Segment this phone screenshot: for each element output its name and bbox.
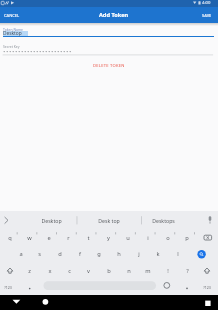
staticText: l — [177, 250, 179, 258]
button[interactable]: o — [158, 230, 177, 246]
button[interactable] — [198, 296, 215, 309]
button[interactable]: i — [138, 230, 157, 246]
staticText: z — [28, 267, 31, 275]
staticText: e — [47, 234, 51, 242]
staticText: ? — [186, 267, 189, 275]
staticText: n — [127, 267, 131, 275]
button[interactable]: t — [79, 230, 98, 246]
staticText: ?123 — [203, 285, 211, 290]
staticText: Add Token — [99, 11, 129, 19]
button[interactable]: q — [0, 230, 19, 246]
staticText: q — [8, 234, 12, 242]
staticText: Desktop — [3, 30, 22, 37]
button[interactable] — [8, 296, 25, 309]
button[interactable]: z — [20, 263, 39, 279]
button[interactable]: r — [59, 230, 78, 246]
button[interactable]: Desktops — [137, 212, 189, 229]
button[interactable]: ?123 — [0, 280, 15, 294]
staticText: g — [97, 250, 101, 258]
staticText: o — [166, 234, 170, 242]
button[interactable]: e — [39, 230, 58, 246]
button[interactable]: DELETE TOKEN — [78, 61, 140, 70]
button[interactable]: n — [119, 263, 138, 279]
staticText: 4:00 — [202, 0, 211, 6]
button[interactable]: w — [20, 230, 39, 246]
button[interactable]: ! — [158, 263, 177, 279]
staticText: ! — [167, 267, 169, 275]
button[interactable]: y — [99, 230, 118, 246]
button[interactable]: Desktop — [26, 212, 76, 229]
staticText: Token Name — [3, 27, 23, 32]
staticText: j — [138, 250, 140, 258]
staticText: DELETE TOKEN — [93, 63, 125, 69]
button[interactable]: v — [79, 263, 98, 279]
button[interactable]: k — [148, 246, 167, 262]
staticText: x — [48, 267, 52, 275]
staticText: f — [79, 250, 81, 258]
staticText: r — [67, 234, 70, 242]
button[interactable]: CANCEL — [0, 7, 24, 23]
staticText: Desktops — [152, 217, 175, 224]
button[interactable]: h — [109, 246, 128, 262]
staticText: m — [145, 267, 151, 275]
staticText: b — [107, 267, 111, 275]
staticText: a — [19, 250, 23, 258]
button[interactable]: g — [89, 246, 108, 262]
staticText: Desk top — [98, 217, 120, 224]
staticText: t — [87, 234, 90, 242]
staticText: d — [58, 250, 62, 258]
button[interactable]: c — [60, 263, 79, 279]
button[interactable]: m — [138, 263, 157, 279]
staticText: ?123 — [4, 285, 12, 290]
button[interactable]: Desk top — [82, 212, 136, 229]
staticText: s — [38, 250, 41, 258]
button[interactable]: p — [177, 230, 196, 246]
staticText: v — [87, 267, 90, 275]
button[interactable] — [37, 296, 54, 309]
button[interactable]: f — [70, 246, 89, 262]
button[interactable]: x — [40, 263, 59, 279]
staticText: Secret Key — [3, 44, 20, 49]
staticText: SAVE — [202, 13, 212, 18]
staticText: y — [107, 234, 110, 242]
button[interactable]: u — [118, 230, 137, 246]
button[interactable]: SAVE — [197, 7, 216, 23]
button[interactable]: ? — [178, 263, 197, 279]
staticText: u — [126, 234, 130, 242]
staticText: i — [147, 234, 149, 242]
button[interactable]: ?123 — [199, 280, 214, 294]
button[interactable]: d — [50, 246, 69, 262]
staticText: c — [68, 267, 71, 275]
button[interactable]: b — [99, 263, 118, 279]
staticText: h — [117, 250, 121, 258]
button[interactable]: s — [30, 246, 49, 262]
button[interactable]: l — [168, 246, 187, 262]
staticText: Desktop — [41, 217, 62, 224]
staticText: k — [156, 250, 160, 258]
staticText: p — [185, 234, 189, 242]
button[interactable]: j — [129, 246, 148, 262]
staticText: CANCEL — [4, 13, 20, 18]
staticText: w — [27, 234, 32, 242]
button[interactable]: a — [11, 246, 30, 262]
